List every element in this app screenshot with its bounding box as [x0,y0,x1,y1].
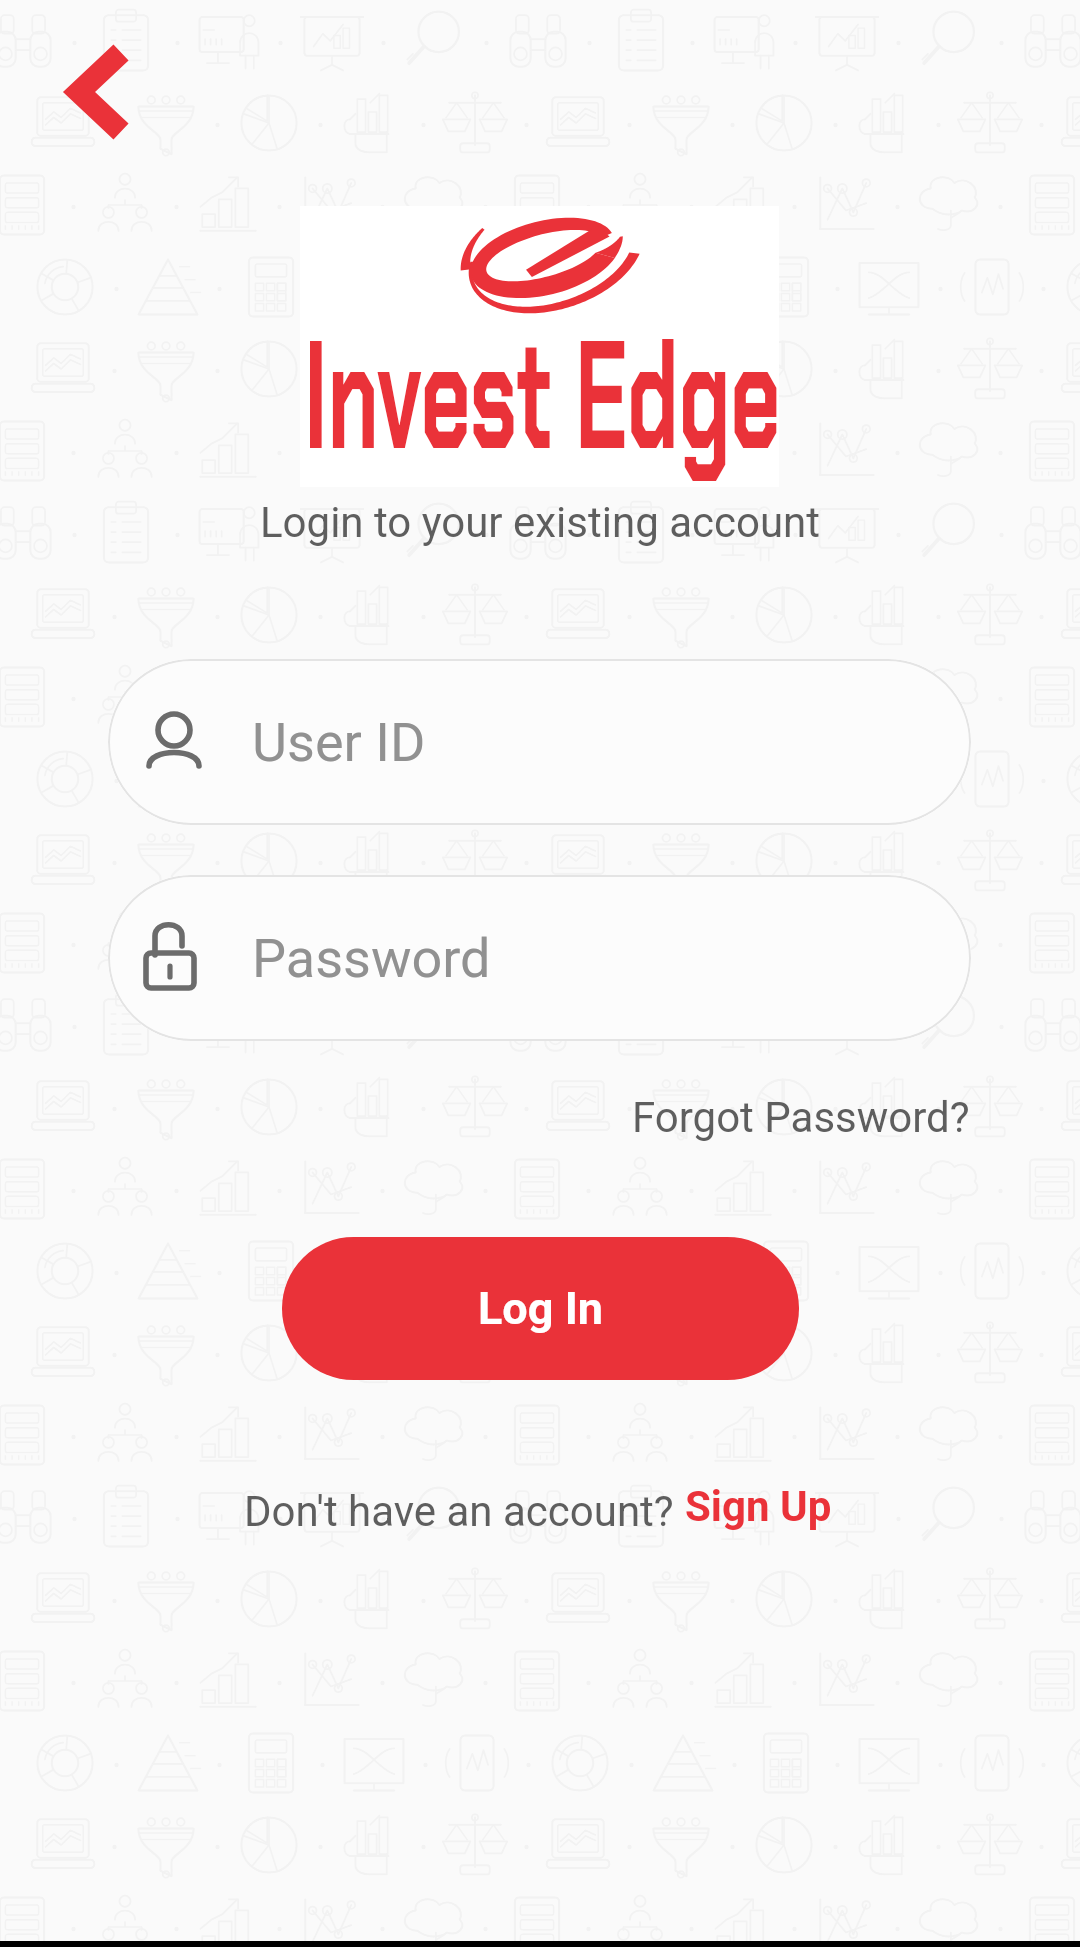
button[interactable]: Log In [282,1237,799,1380]
staticText: User ID [252,711,426,774]
button[interactable]: User ID [108,659,971,825]
staticText: Password [252,927,491,990]
staticText: Log In [478,1282,604,1335]
staticText: Login to your existing account [260,498,821,547]
staticText: Forgot Password? [632,1093,970,1142]
button[interactable]: Sign Up [685,1472,836,1541]
button[interactable]: Password [108,875,971,1041]
staticText: Don't have an account? [244,1487,685,1536]
button[interactable]: Forgot Password? [626,1085,976,1150]
button[interactable]: Back [43,37,153,147]
staticText: Invest Edge [304,297,781,495]
staticText: Sign Up [685,1482,832,1531]
